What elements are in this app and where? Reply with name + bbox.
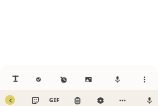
button[interactable]: More bbox=[113, 90, 131, 106]
button[interactable]: Voice input bbox=[140, 90, 158, 106]
button[interactable]: Clipboard bbox=[68, 90, 86, 106]
button[interactable]: Timer bbox=[54, 65, 72, 90]
button[interactable]: More options bbox=[135, 65, 153, 90]
button[interactable]: Back bbox=[5, 95, 15, 105]
button[interactable]: Stickers bbox=[26, 90, 44, 106]
staticText: GIF bbox=[49, 96, 60, 104]
button[interactable]: Grammar check bbox=[29, 65, 47, 90]
button[interactable]: Settings bbox=[91, 90, 109, 106]
button[interactable]: GIF bbox=[45, 92, 63, 106]
button[interactable]: Voice typing bbox=[108, 65, 126, 90]
button[interactable]: Text editing bbox=[6, 65, 24, 90]
button[interactable]: Images bbox=[79, 65, 97, 90]
